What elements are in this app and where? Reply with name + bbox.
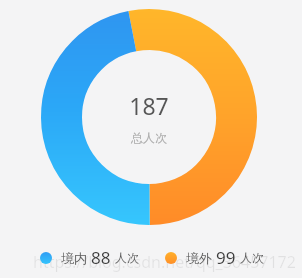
staticText: 99 [216, 246, 236, 269]
button[interactable]: 境内 88 人次 [40, 244, 139, 271]
staticText: 总人次 [131, 130, 167, 145]
staticText: https://blog.csdn.net/qq_36457172 [33, 251, 296, 273]
staticText: 人次 [240, 250, 264, 265]
staticText: 88 [91, 246, 111, 269]
button[interactable]: 境外 99 人次 [165, 244, 264, 271]
staticText: 人次 [115, 250, 139, 265]
staticText: 境内 [61, 250, 87, 266]
button[interactable]: 人次统计环形图 总人次 187 [41, 9, 257, 225]
staticText: 境外 [186, 250, 212, 266]
staticText: 187 [129, 90, 169, 121]
